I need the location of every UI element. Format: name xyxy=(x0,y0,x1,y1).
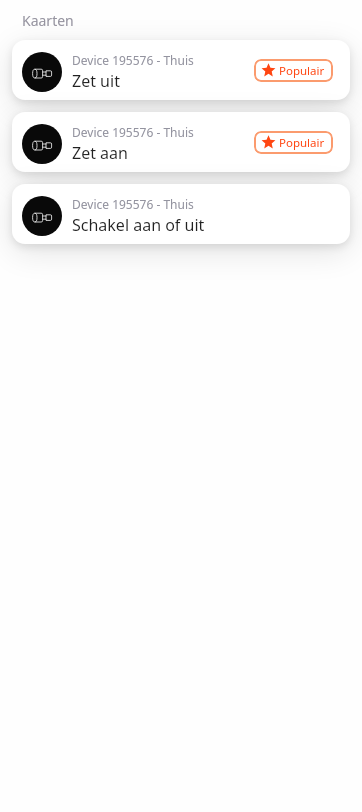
staticText: Device 195576 - Thuis xyxy=(72,196,194,212)
staticText: Zet aan xyxy=(72,142,128,164)
button[interactable]: Stekker xyxy=(12,184,350,244)
button[interactable]: Populair xyxy=(262,59,325,82)
other: Stekker xyxy=(32,206,53,227)
button[interactable]: Populair xyxy=(262,131,325,154)
button[interactable]: Stekker xyxy=(12,112,350,172)
other: Stekker xyxy=(32,134,53,155)
staticText: Populair xyxy=(279,63,325,79)
staticText: Zet uit xyxy=(72,70,120,92)
staticText: Device 195576 - Thuis xyxy=(72,52,194,68)
other: Stekker xyxy=(32,62,53,83)
staticText: Device 195576 - Thuis xyxy=(72,124,194,140)
button[interactable]: Stekker xyxy=(12,40,350,100)
staticText: Populair xyxy=(279,135,325,151)
staticText: Kaarten xyxy=(22,11,74,30)
staticText: Schakel aan of uit xyxy=(72,214,205,236)
